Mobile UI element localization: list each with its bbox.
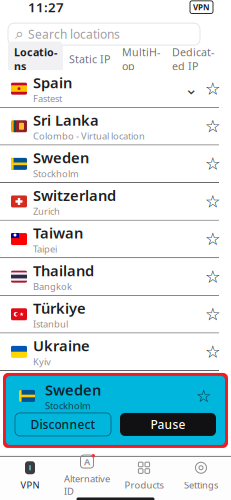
staticText: VPN <box>20 479 39 491</box>
staticText: ☆ <box>205 154 221 174</box>
button[interactable]: Sri Lanka <box>0 108 231 145</box>
staticText: Fastest <box>33 92 62 105</box>
button[interactable]: A <box>58 457 115 493</box>
staticText: ☆ <box>205 116 221 136</box>
button[interactable]: Taiwan <box>0 221 231 258</box>
staticText: Sweden <box>33 148 89 167</box>
staticText: Pause <box>150 416 185 432</box>
staticText: VPN <box>193 2 210 12</box>
staticText: Switzerland <box>33 185 116 205</box>
staticText: Bangkok <box>33 280 72 293</box>
staticText: ☆ <box>205 229 221 249</box>
staticText: Locations <box>14 45 57 73</box>
button[interactable]: Thailand <box>0 258 231 296</box>
staticText: Taipei <box>33 243 57 255</box>
button[interactable]: ★ <box>0 296 231 333</box>
staticText: ⌄ <box>184 80 197 98</box>
staticText: Settings <box>184 479 218 491</box>
staticText: Stockholm <box>33 167 79 180</box>
staticText: Disconnect <box>30 416 95 432</box>
staticText: Thailand <box>33 261 94 280</box>
staticText: ☆ <box>205 267 221 286</box>
button[interactable]: Products <box>115 457 172 493</box>
staticText: ☆ <box>205 79 221 98</box>
staticText: Static IP <box>69 52 110 66</box>
button[interactable]: Settings <box>172 457 229 493</box>
button[interactable]: MultiHop <box>116 41 166 77</box>
staticText: ★ <box>19 311 24 317</box>
staticText: Istanbul <box>33 318 68 330</box>
staticText: A <box>84 455 90 468</box>
staticText: ⌕ <box>15 26 24 42</box>
staticText: MultiHop <box>122 45 160 73</box>
staticText: ☆ <box>205 304 221 324</box>
staticText: Kyiv <box>33 355 51 368</box>
button[interactable]: Spain <box>0 70 231 108</box>
staticText: Alternative ID <box>64 473 110 497</box>
button[interactable]: Static IP <box>63 49 116 70</box>
staticText: Dedicated IP <box>172 45 214 73</box>
staticText: Ukraine <box>33 336 90 355</box>
button[interactable]: Ukraine <box>0 333 231 371</box>
staticText: Türkiye <box>33 298 86 318</box>
staticText: Sri Lanka <box>33 110 99 130</box>
button[interactable]: Sweden <box>0 145 231 183</box>
staticText: ☆ <box>205 192 221 211</box>
button[interactable]: Pause <box>120 413 216 436</box>
staticText: Sweden <box>45 380 101 399</box>
staticText: Colombo - Virtual location <box>33 130 145 142</box>
staticText: Stockholm <box>45 399 91 412</box>
staticText: Zurich <box>33 205 60 217</box>
staticText: 11:27 <box>28 0 64 16</box>
button[interactable]: Switzerland <box>0 183 231 221</box>
button[interactable]: VPN <box>1 457 58 493</box>
staticText: ☆ <box>196 386 212 406</box>
staticText: Spain <box>33 73 72 92</box>
staticText: Search locations <box>28 26 120 42</box>
button[interactable]: Dedicated IP <box>166 41 220 77</box>
staticText: Taiwan <box>33 223 83 243</box>
staticText: ☆ <box>205 342 221 362</box>
button[interactable]: Locations <box>8 41 63 77</box>
button[interactable]: Disconnect <box>15 413 111 436</box>
staticText: Products <box>124 479 163 491</box>
